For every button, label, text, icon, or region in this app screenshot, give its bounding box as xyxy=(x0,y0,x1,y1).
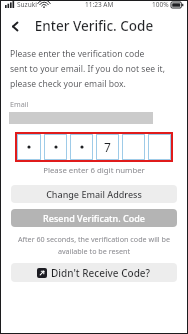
staticText: 7 xyxy=(104,139,111,155)
button[interactable]: Code digit xyxy=(17,134,41,160)
staticText: available to be resent xyxy=(8,246,180,256)
button[interactable]: Code digit xyxy=(148,134,171,160)
staticText: 100% xyxy=(152,0,169,9)
staticText: Didn't Receive Code? xyxy=(51,266,151,280)
button[interactable]: Change Email Address xyxy=(11,185,177,203)
staticText: please check your email box. xyxy=(10,78,126,90)
staticText: Change Email Address xyxy=(46,188,142,200)
staticText: sent to your email. If you do not see it… xyxy=(10,63,165,75)
staticText: Email xyxy=(10,99,29,109)
staticText: 11:23 AM xyxy=(85,0,114,9)
staticText: Please enter the verification code xyxy=(10,48,145,60)
button[interactable]: Code digit xyxy=(44,134,67,160)
button[interactable]: Didn't Receive Code? xyxy=(11,263,177,282)
button[interactable]: Resend Verificatn. Code xyxy=(11,209,177,227)
button[interactable]: Code digit xyxy=(96,134,119,160)
staticText: After 60 seconds, the verification code … xyxy=(8,234,180,244)
staticText: Suzuki xyxy=(17,0,37,9)
button[interactable]: Back xyxy=(4,15,26,37)
staticText: Resend Verificatn. Code xyxy=(43,212,145,224)
button[interactable]: Code digit xyxy=(122,134,145,160)
staticText: Please enter 6 digit number xyxy=(8,165,180,176)
staticText: Enter Verific. Code xyxy=(0,17,188,35)
button[interactable]: Code digit xyxy=(70,134,93,160)
